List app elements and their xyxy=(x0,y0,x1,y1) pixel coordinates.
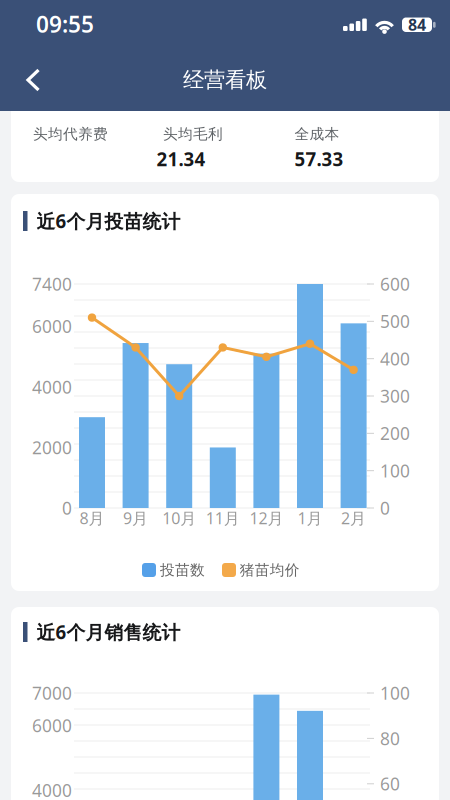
staticText: 600 xyxy=(380,272,410,295)
staticText: 4000 xyxy=(32,779,72,800)
staticText: 4000 xyxy=(32,375,72,398)
staticText: 经营看板 xyxy=(183,67,267,93)
staticText: 8月 xyxy=(79,507,104,529)
staticText: 1月 xyxy=(297,507,322,529)
staticText: 10月 xyxy=(162,507,196,529)
staticText: 6000 xyxy=(32,315,72,338)
staticText: 全成本 xyxy=(294,125,339,143)
staticText: 2000 xyxy=(32,436,72,459)
staticText: 09:55 xyxy=(36,9,94,39)
staticText: 猪苗均价 xyxy=(240,561,300,579)
staticText: 6000 xyxy=(32,714,72,737)
staticText: 500 xyxy=(380,310,410,333)
staticText: 0 xyxy=(380,496,390,519)
staticText: 200 xyxy=(380,422,410,445)
staticText: 300 xyxy=(380,384,410,407)
staticText: 11月 xyxy=(206,507,240,529)
button[interactable]: Back xyxy=(11,58,55,102)
staticText: 头均代养费 xyxy=(33,125,108,143)
staticText: 7400 xyxy=(32,272,72,295)
staticText: 近6个月投苗统计 xyxy=(36,209,180,233)
staticText: 84 xyxy=(408,14,426,35)
staticText: 400 xyxy=(380,347,410,370)
staticText: 近6个月销售统计 xyxy=(36,620,180,644)
staticText: 头均毛利 xyxy=(163,125,223,143)
staticText: 80 xyxy=(380,727,400,750)
staticText: 57.33 xyxy=(294,147,343,171)
staticText: 12月 xyxy=(249,507,283,529)
staticText: 21.34 xyxy=(156,147,205,171)
staticText: 9月 xyxy=(123,507,148,529)
staticText: 100 xyxy=(380,459,410,482)
staticText: 投苗数 xyxy=(160,561,205,579)
staticText: 2月 xyxy=(341,507,366,529)
staticText: 0 xyxy=(62,496,72,519)
staticText: 7000 xyxy=(32,681,72,704)
staticText: 100 xyxy=(380,681,410,704)
staticText: 60 xyxy=(380,772,400,795)
